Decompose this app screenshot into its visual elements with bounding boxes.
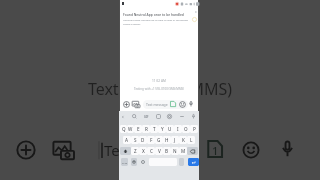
staticText: Texting (SMS/MMS) <box>0 78 320 100</box>
staticText: B <box>165 148 169 154</box>
button[interactable]: S <box>131 136 139 144</box>
staticText: ?123 <box>122 161 128 164</box>
staticText: Q <box>122 126 126 132</box>
staticText: O <box>184 126 188 132</box>
button[interactable]: C <box>147 147 155 155</box>
staticText: H <box>165 137 169 143</box>
button[interactable]: O <box>182 125 190 133</box>
button[interactable]: K <box>179 136 187 144</box>
staticText: N <box>173 148 177 154</box>
button[interactable]: E <box>134 125 142 133</box>
button[interactable]: Collapse <box>121 115 125 119</box>
button[interactable]: P <box>190 125 198 133</box>
staticText: A <box>125 137 129 143</box>
button[interactable]: A <box>123 136 131 144</box>
staticText: C <box>150 148 153 154</box>
button[interactable]: Symbols <box>121 158 128 166</box>
staticText: create a report <box>123 22 141 25</box>
staticText: F <box>150 137 153 143</box>
staticText: P <box>193 126 196 132</box>
button[interactable]: M <box>179 147 187 155</box>
button[interactable]: L <box>187 136 195 144</box>
button[interactable]: Text message <box>97 140 209 160</box>
button[interactable]: H <box>163 136 171 144</box>
button[interactable]: SIM <box>170 101 176 107</box>
staticText: U <box>168 126 172 132</box>
staticText: E <box>137 126 140 132</box>
staticText: R <box>145 126 148 132</box>
staticText: x <box>195 10 197 14</box>
staticText: Found Neutral App once to be handled <box>123 12 184 16</box>
button[interactable]: Y <box>158 125 166 133</box>
button[interactable]: Text message <box>143 100 188 109</box>
button[interactable]: Voice <box>191 114 196 119</box>
staticText: Unusual Player mmapp list to help to loa… <box>123 18 188 21</box>
staticText: 11:52 AM <box>119 79 199 83</box>
button[interactable]: V <box>155 147 163 155</box>
staticText: D <box>141 137 145 143</box>
button[interactable]: I <box>174 125 182 133</box>
staticText: GIF <box>144 115 149 119</box>
button[interactable]: G <box>155 136 163 144</box>
button[interactable]: Language <box>140 158 145 166</box>
button[interactable]: Emoji <box>179 101 186 108</box>
staticText: Y <box>161 126 164 132</box>
button[interactable]: Search <box>132 114 137 119</box>
button[interactable]: SIM 1 <box>207 140 223 158</box>
button[interactable]: X <box>139 147 147 155</box>
button[interactable]: Period <box>179 158 184 166</box>
button[interactable]: Add attachment <box>16 140 36 160</box>
staticText: T <box>153 126 156 132</box>
button[interactable]: Z <box>131 147 139 155</box>
button[interactable]: More <box>179 114 185 119</box>
staticText: M <box>181 148 186 154</box>
button[interactable]: Emoji <box>242 141 260 159</box>
staticText: Text message <box>104 140 200 160</box>
button[interactable]: R <box>142 125 150 133</box>
staticText: 1 <box>212 143 219 158</box>
staticText: W <box>128 126 133 132</box>
button[interactable]: Mic <box>188 101 194 107</box>
button[interactable]: GIF <box>143 114 149 119</box>
button[interactable]: J <box>171 136 179 144</box>
staticText: Texting with +1 555-0100 (SMS/MMS) <box>119 87 199 91</box>
button[interactable]: Q <box>120 125 127 133</box>
staticText: I <box>177 126 179 132</box>
button[interactable]: T <box>150 125 158 133</box>
button[interactable]: Shift <box>120 147 131 155</box>
button[interactable]: U <box>166 125 174 133</box>
button[interactable]: W <box>127 125 134 133</box>
button[interactable]: Add <box>123 101 130 108</box>
staticText: V <box>158 148 161 154</box>
staticText: K <box>182 137 185 143</box>
staticText: J <box>174 137 176 143</box>
staticText: X <box>142 148 145 154</box>
staticText: L <box>190 137 193 143</box>
button[interactable]: Sticker <box>156 114 161 119</box>
button[interactable]: D <box>139 136 147 144</box>
button[interactable]: Voice input <box>280 140 295 158</box>
staticText: Z <box>134 148 137 154</box>
button[interactable]: F <box>147 136 155 144</box>
button[interactable]: Emoji <box>131 158 137 166</box>
staticText: Text message <box>146 102 168 107</box>
button[interactable]: Enter <box>188 158 199 166</box>
button[interactable]: Backspace <box>187 147 198 155</box>
button[interactable]: N <box>171 147 179 155</box>
staticText: S <box>134 137 137 143</box>
button[interactable]: Settings <box>167 114 172 119</box>
button[interactable]: Attach photo <box>53 141 74 160</box>
button[interactable]: Photo <box>132 101 140 108</box>
staticText: G <box>157 137 161 143</box>
button[interactable]: B <box>163 147 171 155</box>
